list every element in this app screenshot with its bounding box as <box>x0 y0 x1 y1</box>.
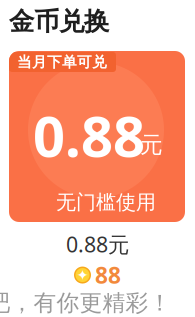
staticText: 无门槛使用 <box>56 190 156 215</box>
staticText: 88 <box>95 260 121 290</box>
staticText: 当月下单可兑 <box>17 53 107 71</box>
staticText: 币赚吧，有你更精彩！ <box>0 289 171 317</box>
staticText: 元 <box>140 131 163 159</box>
staticText: ✦ <box>76 267 88 283</box>
staticText: 0.88 <box>33 98 145 172</box>
staticText: 金币兑换 <box>9 6 109 37</box>
staticText: 0.88元 <box>66 230 129 258</box>
